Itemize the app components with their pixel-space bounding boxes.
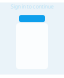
staticText: Sign in to continue: [10, 3, 53, 10]
